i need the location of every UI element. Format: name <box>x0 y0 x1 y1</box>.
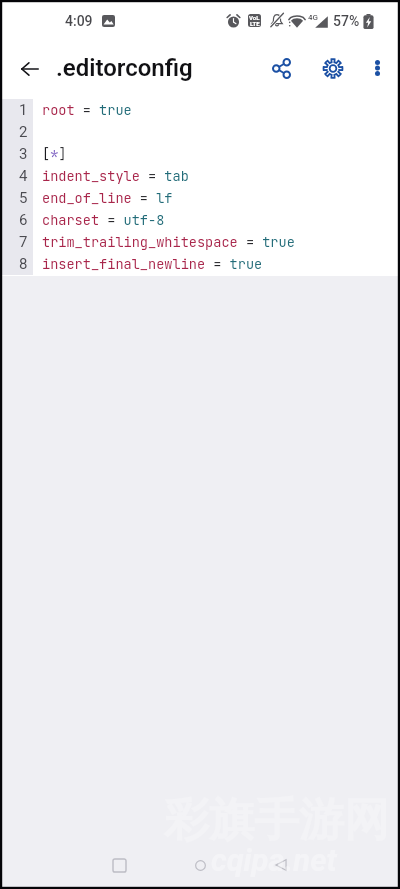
button[interactable]: Share <box>259 46 303 90</box>
button[interactable]: 8 <box>0 253 400 275</box>
button[interactable]: Settings <box>310 46 355 91</box>
button[interactable]: More options <box>355 46 399 90</box>
staticText: 3 <box>19 145 28 163</box>
staticText: insert_final_newline = true <box>42 255 263 273</box>
button[interactable]: 4 <box>0 165 400 187</box>
button[interactable]: Back <box>257 841 305 889</box>
staticText: root = true <box>42 101 132 119</box>
button[interactable]: Recents <box>95 841 143 889</box>
staticText: 4G <box>308 13 318 22</box>
staticText: cqipa.net <box>211 842 337 878</box>
staticText: 57% <box>333 13 360 29</box>
staticText: charset = utf-8 <box>42 211 165 229</box>
button[interactable]: 2 <box>0 121 400 143</box>
button[interactable]: 5 <box>0 187 400 209</box>
staticText: 4 <box>19 167 28 185</box>
button[interactable]: 6 <box>0 209 400 231</box>
button[interactable]: Back <box>7 46 52 91</box>
staticText: LTE <box>250 20 260 27</box>
staticText: 2 <box>19 123 28 141</box>
staticText: .editorconfig <box>56 54 193 82</box>
staticText: 8 <box>19 255 28 273</box>
staticText: 5 <box>19 189 28 207</box>
staticText: trim_trailing_whitespace = true <box>42 233 295 251</box>
staticText: 6 <box>19 211 28 229</box>
button[interactable]: 7 <box>0 231 400 253</box>
button[interactable]: 1 <box>0 99 400 121</box>
staticText: 7 <box>19 233 28 251</box>
staticText: VoL <box>249 14 260 21</box>
staticText: end_of_line = lf <box>42 189 173 207</box>
button[interactable]: Home <box>176 841 224 889</box>
staticText: [*] <box>42 145 67 163</box>
staticText: 4:09 <box>65 13 93 29</box>
button[interactable]: 3 <box>0 143 400 165</box>
staticText: indent_style = tab <box>42 167 189 185</box>
staticText: 1 <box>19 101 28 119</box>
